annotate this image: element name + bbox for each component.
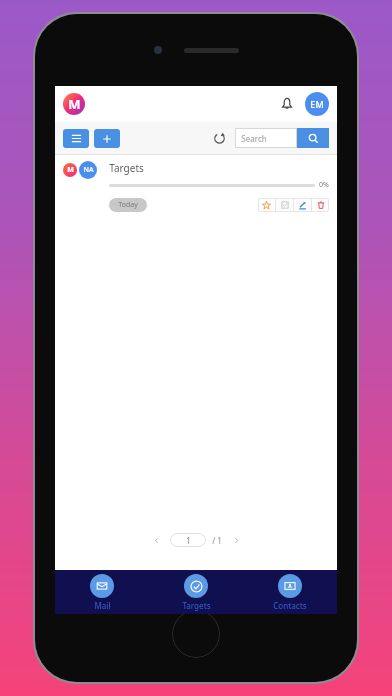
button[interactable]: 1 (170, 533, 206, 547)
staticText: Today (118, 200, 138, 210)
button[interactable]: Next page (228, 532, 244, 548)
button[interactable]: Today (109, 198, 147, 212)
button[interactable]: Complete (276, 198, 293, 212)
button[interactable]: Contacts (243, 570, 337, 614)
button[interactable]: Targets (149, 570, 243, 614)
button[interactable]: Search (235, 128, 297, 148)
staticText: Contacts (273, 600, 307, 611)
staticText: NA (83, 165, 94, 175)
staticText: EM (310, 98, 324, 110)
button[interactable]: EM (305, 92, 329, 116)
staticText: / 1 (212, 535, 222, 546)
button[interactable]: Mail (55, 570, 149, 614)
button[interactable]: Delete (312, 198, 329, 212)
button[interactable]: Favourite (258, 198, 275, 212)
staticText: 1 (186, 535, 191, 546)
staticText: Search (241, 133, 267, 144)
staticText: M (68, 95, 81, 113)
button[interactable]: Notifications (273, 90, 301, 118)
button[interactable]: Logo (63, 93, 85, 115)
button[interactable]: Search (297, 128, 329, 148)
button[interactable]: Refresh (209, 128, 229, 148)
button[interactable]: Add (94, 129, 120, 148)
staticText: 0% (319, 180, 329, 190)
button[interactable]: M (55, 155, 337, 218)
button[interactable]: Previous page (148, 532, 164, 548)
staticText: M (67, 165, 74, 175)
staticText: Targets (109, 161, 144, 175)
staticText: Mail (94, 600, 111, 611)
button[interactable]: Menu (63, 129, 89, 148)
staticText: Targets (182, 600, 211, 611)
button[interactable]: Edit (294, 198, 311, 212)
